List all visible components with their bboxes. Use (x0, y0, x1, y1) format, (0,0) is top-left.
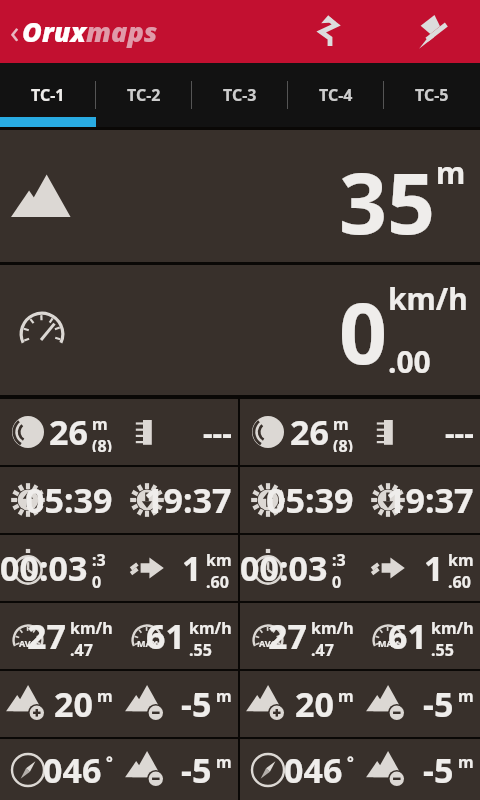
staticText: 61 (146, 613, 185, 659)
staticText: -5 (181, 681, 212, 727)
button[interactable]: TC-5 (384, 63, 480, 127)
staticText: 27 (268, 613, 307, 659)
staticText: TC-4 (319, 84, 353, 106)
button[interactable]: AVG (240, 603, 360, 669)
button[interactable]: 05:39 (0, 467, 119, 533)
button[interactable]: 19:37 (360, 467, 480, 533)
staticText: MAX (378, 637, 399, 649)
staticText: 05:39 (25, 477, 113, 523)
button[interactable]: TC-1 (0, 63, 96, 127)
staticText: 1 (182, 545, 202, 591)
staticText: 35 (339, 144, 436, 248)
staticText: 19:37 (144, 477, 232, 523)
button[interactable]: 35 (0, 130, 480, 262)
staticText: m (458, 751, 474, 773)
button[interactable]: TC-4 (288, 63, 384, 127)
staticText: (8) (92, 435, 113, 452)
button[interactable]: 046 (0, 739, 119, 800)
button[interactable]: MAX (119, 603, 238, 669)
staticText: AVG (259, 637, 278, 649)
staticText: m (97, 685, 113, 707)
button[interactable]: 19:37 (119, 467, 238, 533)
staticText: TC-1 (31, 84, 65, 106)
staticText: .60 (206, 571, 229, 588)
button[interactable]: -5 (360, 739, 480, 800)
button[interactable]: -5 (119, 739, 238, 800)
staticText: TC-3 (223, 84, 257, 106)
button[interactable]: -5 (119, 671, 238, 737)
staticText: 0 (339, 274, 388, 386)
button[interactable]: 26 (0, 399, 119, 465)
staticText: 27 (27, 613, 66, 659)
staticText: 046 (284, 747, 343, 793)
staticText: TC-2 (127, 84, 161, 106)
staticText: km/h (388, 278, 468, 319)
staticText: ‹ (10, 11, 20, 52)
button[interactable]: -5 (360, 671, 480, 737)
button[interactable]: 1 (360, 535, 480, 601)
staticText: 20 (295, 681, 334, 727)
button[interactable]: --- (119, 399, 238, 465)
staticText: (8) (333, 435, 354, 452)
staticText: 00:03 (0, 545, 88, 591)
staticText: m (92, 413, 108, 435)
button[interactable]: 0 (0, 265, 480, 395)
staticText: ° (347, 751, 354, 773)
staticText: :30 (92, 549, 113, 588)
staticText: m (458, 685, 474, 707)
staticText: .47 (70, 639, 93, 656)
staticText: :30 (332, 549, 354, 588)
staticText: m (338, 685, 354, 707)
button[interactable]: 046 (240, 739, 360, 800)
staticText: km/h (189, 617, 232, 639)
staticText: km (206, 549, 232, 571)
button[interactable]: TC-3 (192, 63, 288, 127)
staticText: --- (203, 412, 232, 453)
staticText: --- (445, 412, 474, 453)
button[interactable]: 00:03 (0, 535, 119, 601)
button[interactable]: 26 (240, 399, 360, 465)
staticText: -5 (423, 681, 454, 727)
button[interactable]: --- (360, 399, 480, 465)
staticText: .47 (311, 639, 334, 656)
button[interactable]: OruxMaps home (6, 7, 162, 56)
button[interactable]: TC-2 (96, 63, 192, 127)
staticText: .55 (189, 639, 212, 656)
staticText: TC-5 (415, 84, 449, 106)
staticText: -5 (181, 747, 212, 793)
staticText: m (436, 152, 466, 193)
staticText: km (448, 549, 474, 571)
staticText: .00 (388, 341, 431, 382)
staticText: 046 (43, 747, 102, 793)
button[interactable]: Track (308, 10, 352, 54)
staticText: 19:37 (386, 477, 474, 523)
staticText: 61 (388, 613, 427, 659)
button[interactable]: AVG (0, 603, 119, 669)
staticText: Orux (22, 13, 86, 50)
staticText: .60 (448, 571, 471, 588)
staticText: km/h (431, 617, 474, 639)
staticText: km/h (311, 617, 354, 639)
staticText: .55 (431, 639, 454, 656)
button[interactable]: 00:03 (240, 535, 360, 601)
staticText: 1 (424, 545, 444, 591)
button[interactable]: Pin waypoint (412, 10, 456, 54)
staticText: 26 (49, 409, 88, 455)
staticText: m (216, 751, 232, 773)
staticText: m (333, 413, 349, 435)
staticText: m (216, 685, 232, 707)
staticText: MAX (137, 637, 158, 649)
button[interactable]: 20 (0, 671, 119, 737)
staticText: 20 (54, 681, 93, 727)
button[interactable]: 05:39 (240, 467, 360, 533)
button[interactable]: 20 (240, 671, 360, 737)
staticText: 00:03 (240, 545, 328, 591)
staticText: 26 (290, 409, 329, 455)
staticText: ° (106, 751, 113, 773)
button[interactable]: 1 (119, 535, 238, 601)
staticText: 05:39 (266, 477, 354, 523)
button[interactable]: MAX (360, 603, 480, 669)
staticText: km/h (70, 617, 113, 639)
staticText: maps (86, 13, 158, 50)
staticText: AVG (19, 637, 38, 649)
